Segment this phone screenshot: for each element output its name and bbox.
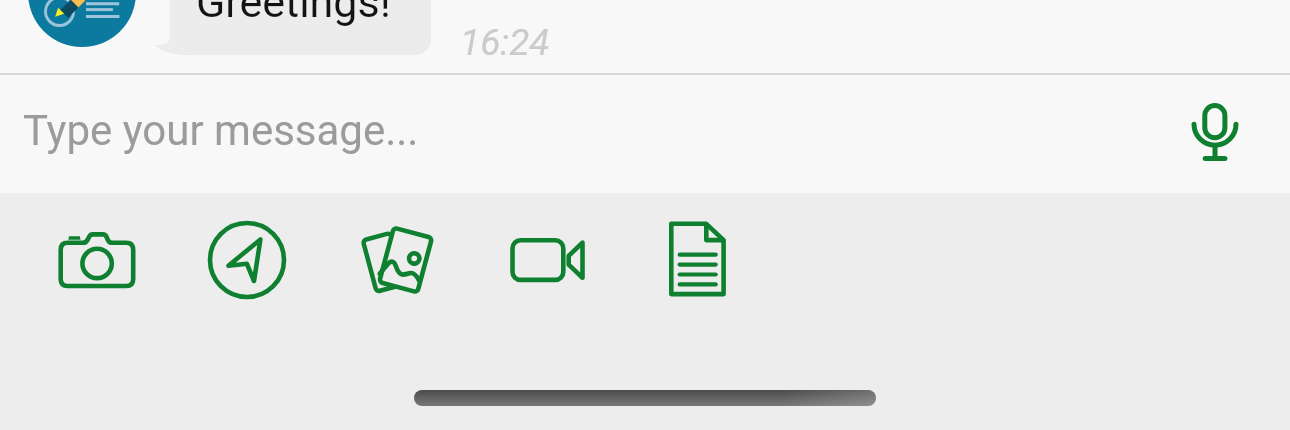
button[interactable]: Camera — [53, 217, 141, 305]
button[interactable]: Document — [653, 215, 741, 303]
staticText: Type your message... — [23, 106, 419, 155]
staticText: 16:24 — [460, 21, 550, 64]
button[interactable]: Video — [503, 216, 591, 304]
button[interactable]: Location — [203, 216, 291, 304]
button[interactable]: Gallery — [353, 216, 441, 304]
button[interactable]: Record voice message — [1175, 94, 1255, 174]
staticText: Greetings! — [196, 0, 391, 27]
